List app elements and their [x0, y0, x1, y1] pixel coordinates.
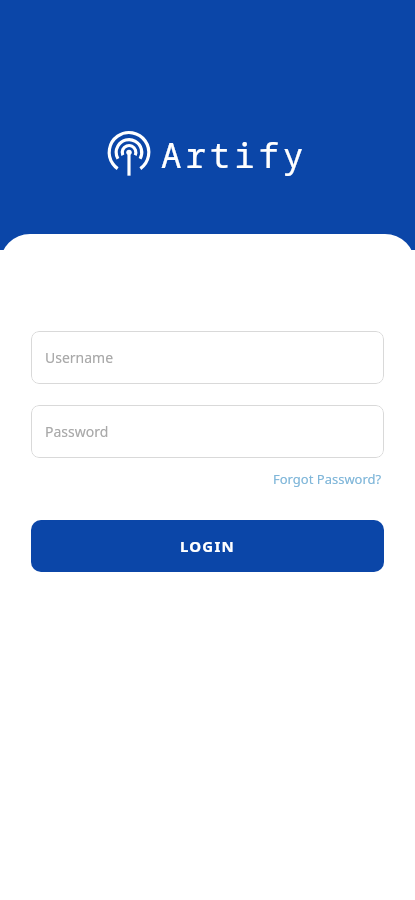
button[interactable]: Password [31, 405, 384, 458]
other: Artify logo [107, 133, 151, 177]
button[interactable]: Username [31, 331, 384, 384]
button[interactable]: LOGIN [31, 520, 384, 572]
staticText: Username [45, 348, 114, 367]
staticText: LOGIN [180, 536, 235, 556]
staticText: Artify [161, 132, 308, 178]
staticText: Password [45, 422, 109, 441]
button[interactable]: Forgot Password? [271, 466, 384, 492]
staticText: Forgot Password? [273, 470, 382, 488]
